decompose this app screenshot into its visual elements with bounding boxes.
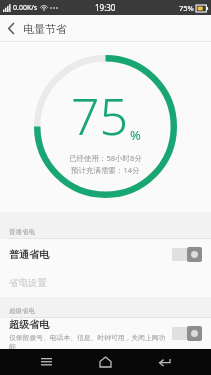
button[interactable]: Back (0, 17, 17, 40)
button[interactable]: Back (152, 351, 177, 374)
button[interactable]: Toggle (172, 326, 202, 341)
staticText: 超级省电 (9, 318, 49, 331)
staticText: 普通省电 (9, 248, 49, 261)
button[interactable]: 普通省电 (0, 239, 211, 269)
staticText: 0.00K/s (13, 3, 38, 13)
staticText: 已经使用：58小时8分 (69, 153, 142, 163)
staticText: 75% (179, 3, 194, 13)
button[interactable]: Menu (34, 351, 59, 373)
staticText: 19:30 (95, 2, 116, 13)
staticText: 仅保留拨号、电话本、信息、时钟可用，关闭上网功能 (9, 333, 172, 349)
staticText: 超级省电 (9, 307, 35, 315)
staticText: 省电设置 (9, 277, 47, 289)
staticText: 普通省电 (9, 228, 35, 236)
button[interactable]: Home (93, 350, 118, 374)
button[interactable]: Toggle (172, 247, 202, 262)
staticText: 75 (71, 82, 129, 150)
staticText: % (130, 126, 141, 144)
staticText: 电量节省 (23, 22, 67, 36)
button[interactable]: 省电设置 (0, 269, 211, 297)
staticText: 预计充满需要：14分 (71, 165, 140, 175)
button[interactable]: 超级省电 (0, 318, 211, 349)
